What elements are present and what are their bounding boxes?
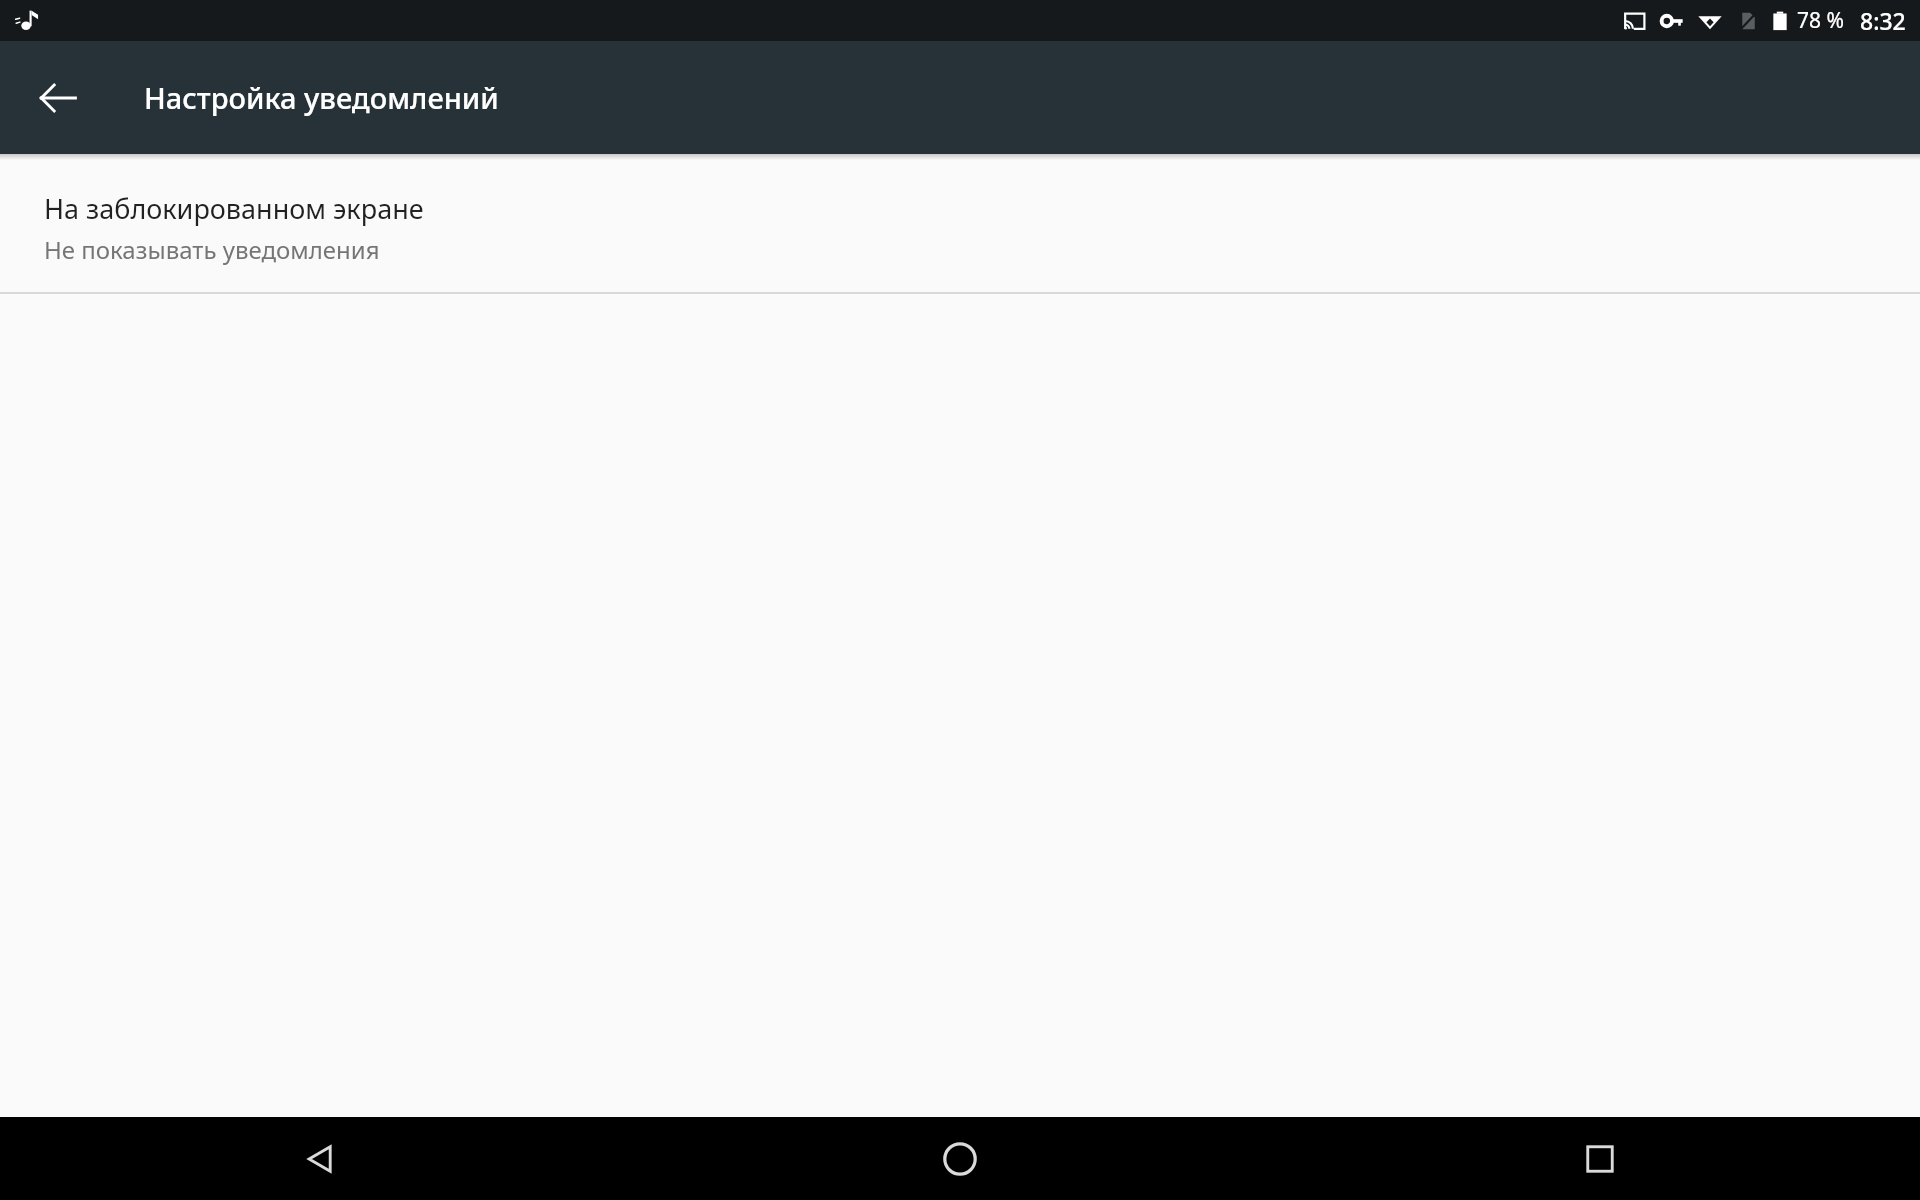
button[interactable]: Back [272, 1117, 368, 1200]
button[interactable]: На заблокированном экране [0, 160, 1920, 292]
button[interactable]: Back [22, 62, 94, 134]
staticText: 78 % [1797, 6, 1844, 35]
staticText: Настройка уведомлений [144, 78, 499, 117]
staticText: Не показывать уведомления [44, 233, 380, 266]
staticText: На заблокированном экране [44, 190, 424, 227]
button[interactable]: Home [912, 1117, 1008, 1200]
button[interactable]: Recent apps [1552, 1117, 1648, 1200]
staticText: 8:32 [1860, 5, 1906, 36]
